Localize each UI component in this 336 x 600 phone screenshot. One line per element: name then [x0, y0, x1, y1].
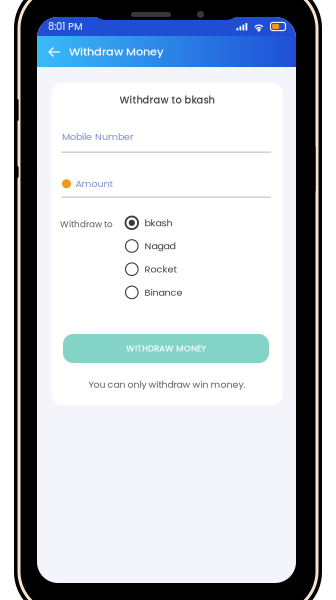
staticText: Nagad [145, 239, 176, 253]
staticText: Withdraw Money [69, 44, 164, 59]
button[interactable]: Rocket [125, 262, 177, 276]
button[interactable]: Binance [125, 286, 183, 299]
staticText: 8:01 PM [48, 20, 83, 33]
button[interactable]: WITHDRAW MONEY [63, 334, 269, 363]
staticText: Rocket [145, 262, 177, 276]
staticText: Binance [145, 286, 183, 299]
button[interactable]: Nagad [125, 239, 176, 253]
staticText: Mobile Number [62, 130, 134, 143]
staticText: WITHDRAW MONEY [126, 342, 206, 354]
staticText: Withdraw to bkash [119, 93, 214, 107]
staticText: Withdraw to [60, 218, 113, 230]
button[interactable]: bkash [125, 216, 173, 230]
staticText: bkash [145, 216, 173, 229]
button[interactable]: Back [43, 36, 69, 67]
staticText: Amount [75, 177, 112, 190]
staticText: You can only withdraw win money. [88, 378, 245, 391]
